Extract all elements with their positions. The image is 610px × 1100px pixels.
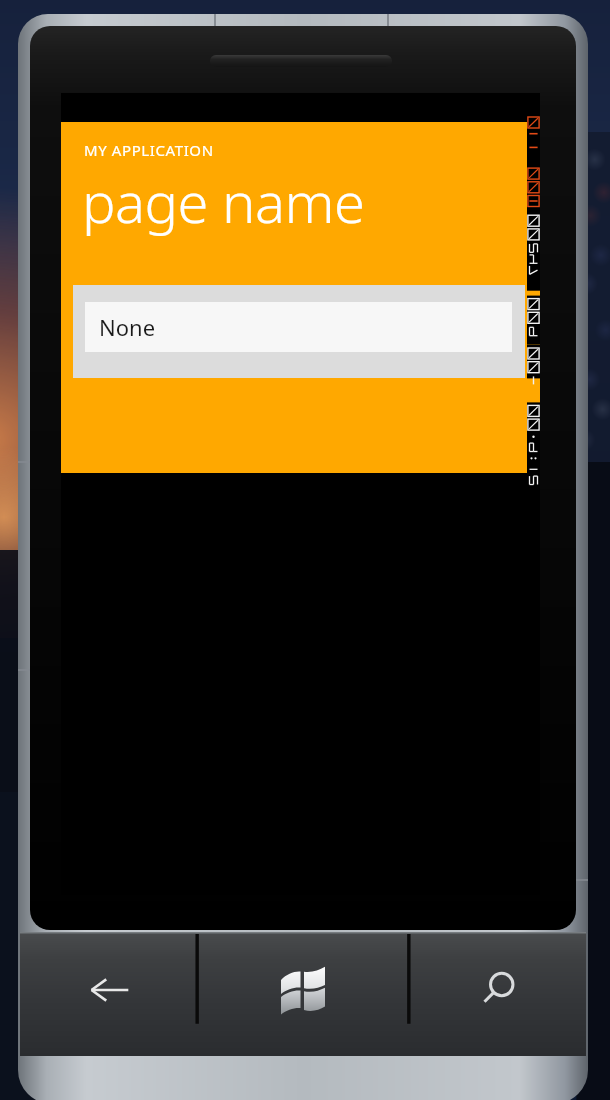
staticText: MY APPLICATION [84,140,214,160]
button[interactable]: Back [20,932,197,1056]
button[interactable]: Start [197,932,409,1056]
button[interactable]: Search [409,932,586,1056]
staticText: page name [82,163,365,239]
staticText: None [99,312,156,342]
button[interactable]: None [85,302,512,352]
button[interactable]: None [73,285,525,378]
